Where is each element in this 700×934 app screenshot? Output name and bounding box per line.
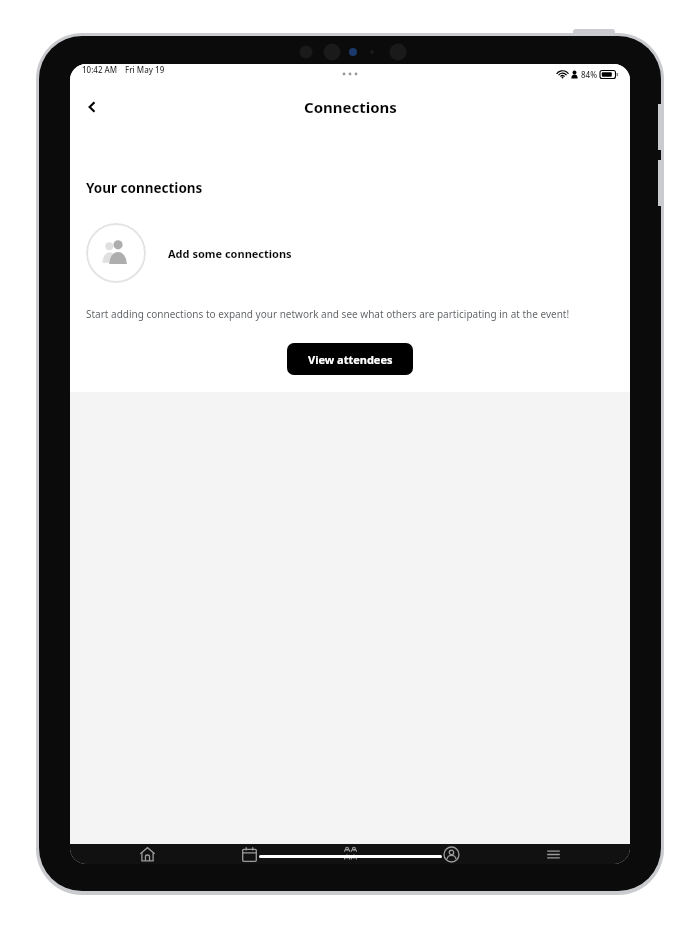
button[interactable]: Home [123, 844, 171, 864]
button[interactable]: Menu [529, 844, 577, 864]
staticText: Fri May 19 [125, 64, 165, 75]
button[interactable]: Profile [427, 844, 475, 864]
button[interactable]: Back [76, 91, 108, 123]
staticText: View attendees [308, 352, 393, 367]
button[interactable]: View attendees [287, 343, 413, 375]
staticText: 84% [581, 69, 597, 80]
staticText: 10:42 AM [82, 64, 118, 75]
button[interactable]: Calendar [225, 844, 273, 864]
staticText: Start adding connections to expand your … [86, 307, 614, 321]
staticText: Add some connections [168, 246, 292, 261]
staticText: Connections [304, 97, 397, 117]
button[interactable]: Connections [326, 844, 374, 864]
staticText: Your connections [86, 179, 203, 197]
